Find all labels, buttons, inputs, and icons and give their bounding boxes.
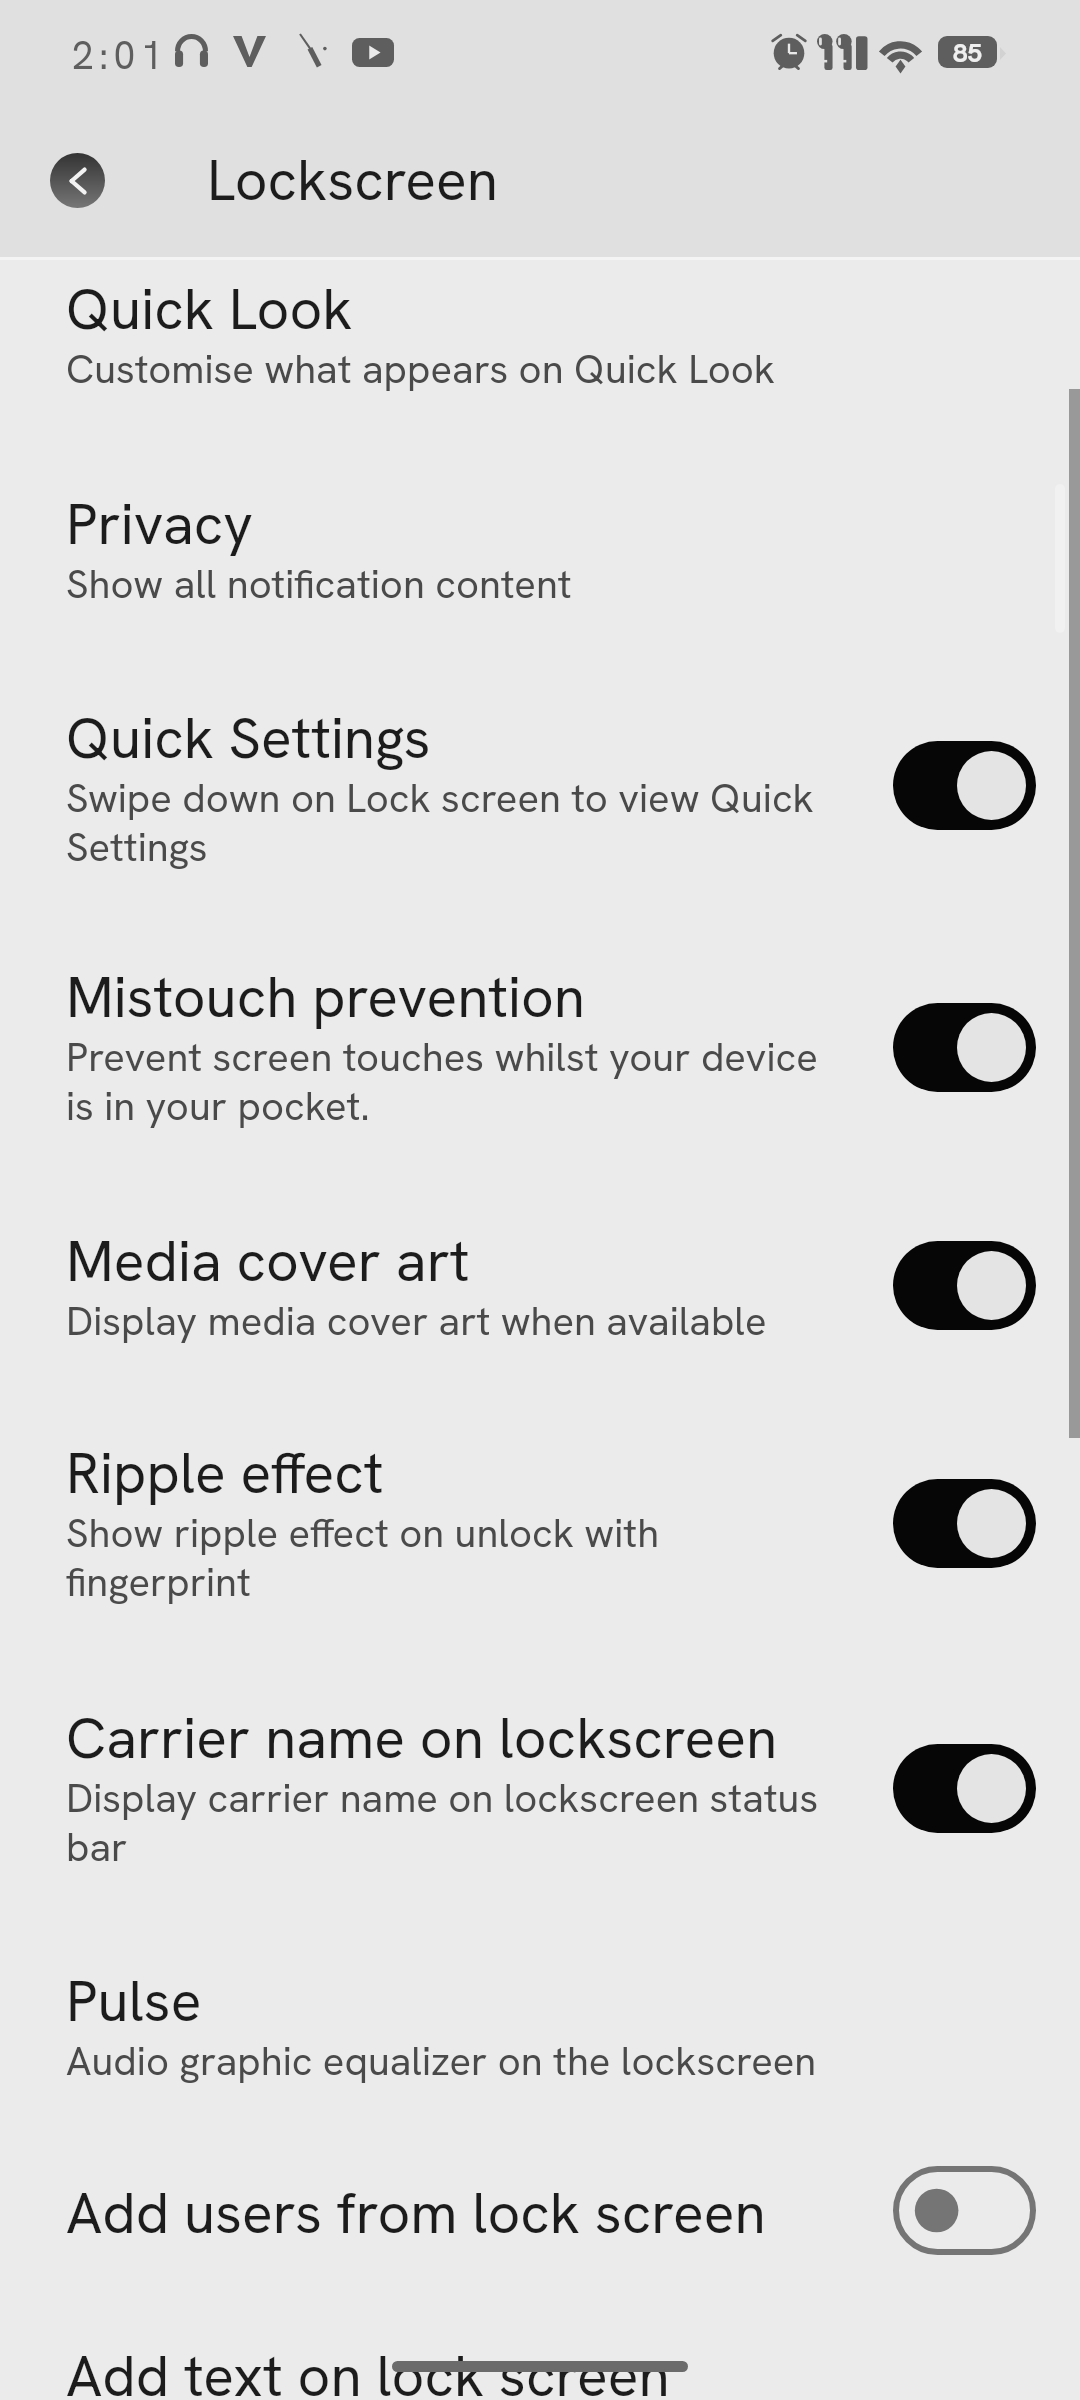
staticText: Quick Look [66, 277, 353, 345]
button[interactable]: Quick Settings [0, 655, 1080, 915]
staticText: Audio graphic equalizer on the lockscree… [66, 2037, 817, 2086]
staticText: Media cover art [66, 1229, 470, 1297]
button[interactable]: Privacy [0, 440, 1080, 655]
button[interactable]: Back [50, 153, 105, 208]
staticText: 2:01 [72, 30, 168, 81]
staticText: Show ripple effect on unlock with finger… [66, 1509, 850, 1607]
staticText: Customise what appears on Quick Look [66, 345, 776, 394]
button[interactable]: Media cover art [0, 1178, 1080, 1392]
staticText: Prevent screen touches whilst your devic… [66, 1033, 850, 1131]
staticText: Quick Settings [66, 706, 431, 774]
button[interactable]: Quick Settings [893, 741, 1036, 830]
staticText: 85 [953, 36, 983, 68]
button[interactable]: Quick Look [0, 258, 1080, 440]
button[interactable]: Carrier name on lockscreen [893, 1744, 1036, 1833]
button[interactable]: Add users from lock screen [0, 2132, 1080, 2292]
staticText: Display media cover art when available [66, 1297, 767, 1346]
staticText: Show all notification content [66, 560, 572, 609]
staticText: Privacy [66, 492, 254, 560]
button[interactable]: Media cover art [893, 1241, 1036, 1330]
button[interactable]: Ripple effect [0, 1392, 1080, 1655]
button[interactable]: Add users from lock screen [893, 2166, 1036, 2255]
button[interactable]: Add text on lock screen [0, 2292, 1080, 2400]
button[interactable]: Ripple effect [893, 1479, 1036, 1568]
staticText: Add users from lock screen [66, 2181, 766, 2249]
button[interactable]: Mistouch prevention [0, 915, 1080, 1178]
staticText: Display carrier name on lockscreen statu… [66, 1774, 850, 1872]
staticText: Swipe down on Lock screen to view Quick … [66, 774, 850, 872]
staticText: Carrier name on lockscreen [66, 1706, 778, 1774]
staticText: Mistouch prevention [66, 965, 586, 1033]
staticText: Add text on lock screen [66, 2344, 670, 2400]
staticText: Pulse [66, 1969, 202, 2037]
staticText: Ripple effect [66, 1441, 384, 1509]
button[interactable]: Pulse [0, 1918, 1080, 2132]
staticText: Lockscreen [207, 143, 499, 217]
button[interactable]: Mistouch prevention [893, 1003, 1036, 1092]
button[interactable]: Carrier name on lockscreen [0, 1655, 1080, 1918]
